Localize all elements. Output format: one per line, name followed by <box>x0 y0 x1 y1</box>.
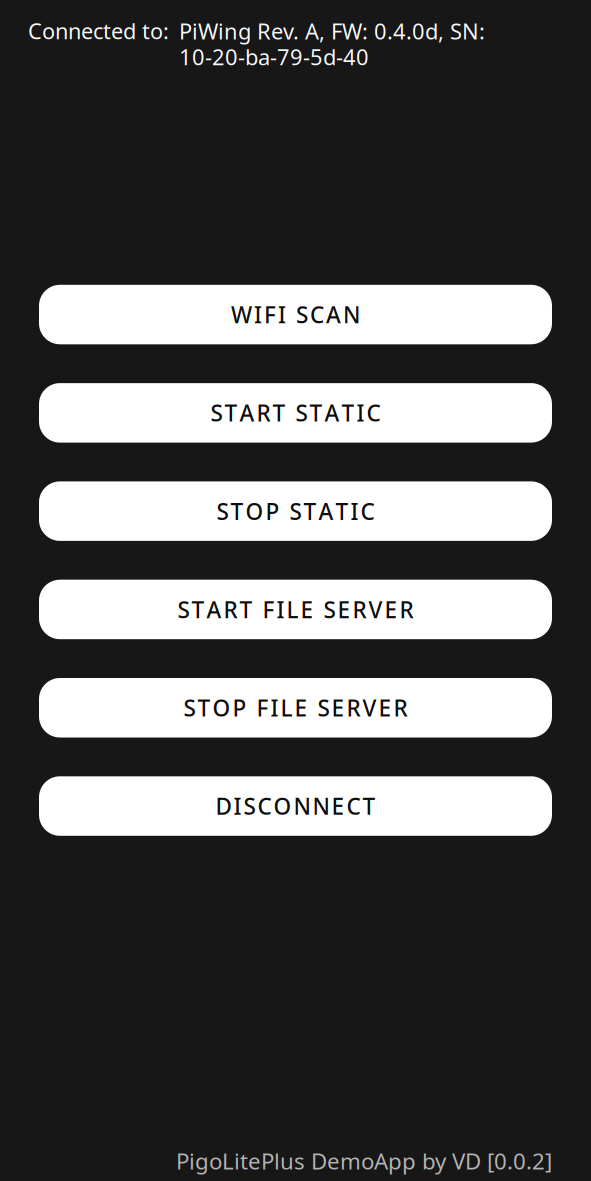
button[interactable]: DISCONNECT <box>39 776 552 836</box>
staticText: Connected to: <box>28 16 169 46</box>
staticText: PigoLitePlus DemoApp by VD [0.0.2] <box>176 1146 552 1176</box>
button[interactable]: STOP STATIC <box>39 481 552 541</box>
button[interactable]: STOP FILE SERVER <box>39 678 552 737</box>
button[interactable]: START STATIC <box>39 383 552 443</box>
button[interactable]: START FILE SERVER <box>39 580 552 639</box>
button[interactable]: WIFI SCAN <box>39 285 552 344</box>
staticText: 10-20-ba-79-5d-40 <box>179 42 369 72</box>
staticText: PiWing Rev. A, FW: 0.4.0d, SN: <box>179 16 485 46</box>
